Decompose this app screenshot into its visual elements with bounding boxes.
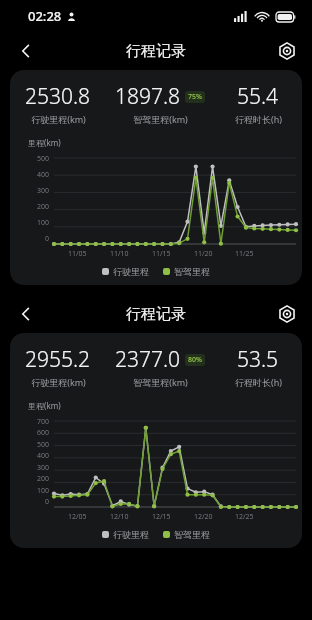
- staticText: 2955.2: [25, 345, 91, 374]
- staticText: 11/10: [110, 249, 129, 259]
- staticText: 0: [45, 234, 50, 244]
- staticText: 里程(km): [28, 400, 61, 411]
- staticText: 里程(km): [28, 137, 61, 148]
- staticText: 行驶里程(km): [31, 113, 86, 125]
- button[interactable]: Settings: [270, 34, 304, 68]
- staticText: 行驶里程: [113, 266, 149, 277]
- staticText: 80%: [188, 355, 202, 365]
- staticText: 53.5: [237, 345, 279, 374]
- staticText: 300: [37, 463, 50, 473]
- button[interactable]: Back: [8, 33, 44, 69]
- staticText: 700: [37, 417, 50, 427]
- staticText: 2377.0: [115, 345, 181, 374]
- staticText: 11/25: [235, 249, 254, 259]
- staticText: 智驾里程(km): [133, 113, 188, 125]
- staticText: 400: [37, 451, 50, 461]
- staticText: 11/20: [194, 249, 213, 259]
- staticText: 11/15: [152, 249, 171, 259]
- staticText: 1897.8: [115, 82, 181, 111]
- staticText: 智驾里程: [174, 529, 210, 540]
- staticText: 行驶里程(km): [31, 376, 86, 388]
- staticText: 300: [37, 186, 50, 196]
- staticText: 智驾里程: [174, 266, 210, 277]
- staticText: 行程时长(h): [235, 376, 282, 388]
- staticText: 400: [37, 170, 50, 180]
- staticText: 12/15: [152, 512, 171, 522]
- staticText: 行程时长(h): [235, 113, 282, 125]
- staticText: 12/20: [194, 512, 213, 522]
- staticText: 12/05: [68, 512, 87, 522]
- staticText: 12/10: [110, 512, 129, 522]
- staticText: 12/25: [235, 512, 254, 522]
- button[interactable]: Settings: [270, 297, 304, 331]
- staticText: 11/05: [68, 249, 87, 259]
- staticText: 行程记录: [126, 305, 186, 324]
- staticText: 55.4: [237, 82, 279, 111]
- staticText: 200: [37, 474, 50, 484]
- staticText: 0: [45, 497, 50, 507]
- staticText: 2530.8: [25, 82, 91, 111]
- staticText: 500: [37, 440, 50, 450]
- staticText: 02:28: [28, 7, 62, 25]
- staticText: 行程记录: [126, 42, 186, 61]
- button[interactable]: 2530.8: [10, 70, 302, 285]
- staticText: 500: [37, 154, 50, 164]
- staticText: 200: [37, 202, 50, 212]
- staticText: 行驶里程: [113, 529, 149, 540]
- staticText: 智驾里程(km): [133, 376, 188, 388]
- staticText: 100: [37, 218, 50, 228]
- button[interactable]: Back: [8, 296, 44, 332]
- button[interactable]: 2955.2: [10, 333, 302, 548]
- staticText: 100: [37, 486, 50, 496]
- staticText: 75%: [188, 92, 202, 102]
- staticText: 600: [37, 428, 50, 438]
